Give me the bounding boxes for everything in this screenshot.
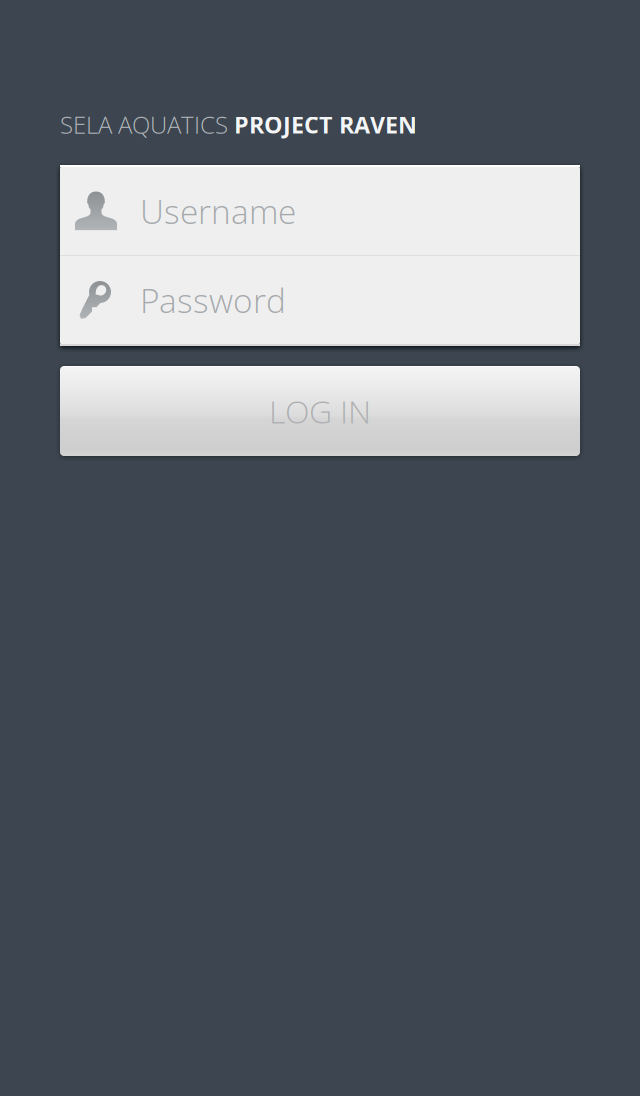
staticText: LOG IN xyxy=(269,389,371,433)
button[interactable]: Password xyxy=(60,256,580,344)
staticText: Username xyxy=(140,188,296,234)
staticText: SELA AQUATICS xyxy=(60,108,234,141)
button[interactable]: Username xyxy=(60,167,580,255)
button[interactable]: LOG IN xyxy=(60,366,580,456)
staticText: Password xyxy=(140,277,286,323)
staticText: PROJECT RAVEN xyxy=(234,109,417,140)
